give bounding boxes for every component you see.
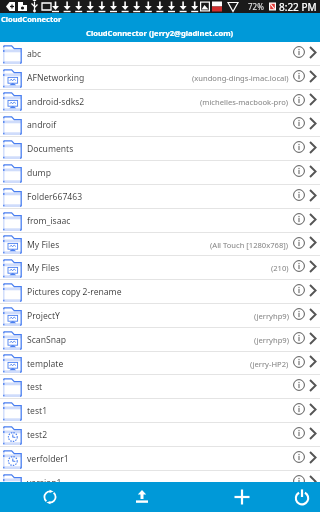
staticText: AFNetworking xyxy=(27,72,85,84)
staticText: ProjectY xyxy=(27,310,60,322)
button[interactable]: Folder667463 xyxy=(0,185,320,209)
staticText: My Files xyxy=(27,262,60,274)
button[interactable]: Refresh xyxy=(30,482,70,512)
staticText: My Files xyxy=(27,239,60,251)
button[interactable]: Add xyxy=(222,482,262,512)
staticText: (jerryhp9) xyxy=(254,311,289,321)
button[interactable]: Upload xyxy=(122,482,162,512)
button[interactable]: AFNetworking xyxy=(0,66,320,90)
staticText: (xundong-dings-imac.local) xyxy=(192,73,289,83)
staticText: android-sdks2 xyxy=(27,96,85,108)
staticText: (210) xyxy=(271,263,289,273)
staticText: 72% xyxy=(248,1,264,12)
staticText: test xyxy=(27,381,43,393)
button[interactable]: test xyxy=(0,375,320,399)
staticText: Pictures copy 2-rename xyxy=(27,286,122,298)
button[interactable]: My Files xyxy=(0,233,320,256)
staticText: androif xyxy=(27,119,57,131)
staticText: version1 xyxy=(27,477,62,483)
button[interactable]: from_isaac xyxy=(0,209,320,233)
button[interactable]: Pictures copy 2-rename xyxy=(0,280,320,304)
staticText: Folder667463 xyxy=(27,191,83,203)
staticText: CloudConnector xyxy=(1,14,62,24)
staticText: verfolder1 xyxy=(27,453,69,465)
staticText: template xyxy=(27,358,64,370)
button[interactable]: dump xyxy=(0,161,320,185)
staticText: (jerryhp9) xyxy=(254,335,289,345)
button[interactable]: android-sdks2 xyxy=(0,90,320,113)
button[interactable]: verfolder1 xyxy=(0,447,320,471)
staticText: dump xyxy=(27,167,51,179)
button[interactable]: template xyxy=(0,352,320,375)
button[interactable]: test2 xyxy=(0,423,320,447)
staticText: CloudConnector (jerry2@gladinet.com) xyxy=(86,28,234,38)
button[interactable]: ProjectY xyxy=(0,304,320,328)
button[interactable]: androif xyxy=(0,113,320,137)
button[interactable]: version1 xyxy=(0,471,320,483)
staticText: abc xyxy=(27,48,42,60)
staticText: test2 xyxy=(27,429,48,441)
staticText: (michelles-macbook-pro) xyxy=(200,97,289,107)
button[interactable]: Power xyxy=(284,482,320,512)
staticText: test1 xyxy=(27,405,48,417)
button[interactable]: ScanSnap xyxy=(0,328,320,352)
staticText: (jerry-HP2) xyxy=(250,359,289,369)
staticText: from_isaac xyxy=(27,215,71,227)
staticText: Documents xyxy=(27,143,74,155)
button[interactable]: test1 xyxy=(0,399,320,423)
button[interactable]: My Files xyxy=(0,256,320,280)
staticText: ScanSnap xyxy=(27,334,67,346)
staticText: 8:22 PM xyxy=(279,0,317,13)
button[interactable]: abc xyxy=(0,42,320,66)
staticText: (All Touch [1280x768]) xyxy=(210,240,289,250)
button[interactable]: Documents xyxy=(0,137,320,161)
